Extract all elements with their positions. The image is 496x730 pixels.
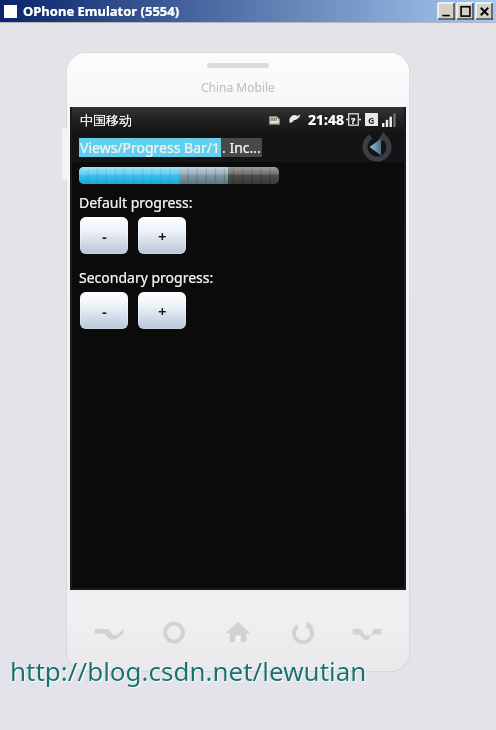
staticText: + — [158, 301, 167, 321]
button[interactable]: Close — [476, 3, 493, 20]
staticText: - — [102, 301, 107, 321]
button[interactable]: + — [138, 217, 186, 254]
button[interactable]: Home — [217, 611, 259, 653]
staticText: Secondary progress: — [79, 268, 214, 287]
button[interactable]: - — [80, 217, 128, 254]
button[interactable]: Back — [360, 132, 394, 162]
button[interactable]: Back — [282, 611, 324, 653]
staticText: + — [158, 226, 167, 246]
staticText: - — [102, 226, 107, 246]
button[interactable]: End call — [346, 611, 388, 653]
staticText: ? — [351, 114, 356, 126]
button[interactable]: Minimize — [438, 3, 455, 20]
staticText: . Inc... — [222, 138, 261, 157]
staticText: G — [368, 114, 375, 126]
button[interactable]: Menu — [88, 611, 130, 653]
staticText: Views/Progress Bar/1 — [80, 138, 220, 157]
button[interactable]: + — [138, 292, 186, 329]
staticText: http://blog.csdn.net/lewutian — [10, 653, 367, 688]
staticText: 21:48 — [308, 110, 344, 129]
staticText: http://blog.csdn.net/lewutian — [11, 654, 368, 689]
button[interactable]: Search — [153, 611, 195, 653]
staticText: Default progress: — [79, 193, 193, 212]
button[interactable]: Maximize — [457, 3, 474, 20]
button[interactable]: - — [80, 292, 128, 329]
staticText: 中国移动 — [80, 112, 132, 128]
staticText: China Mobile — [201, 79, 275, 95]
button[interactable]: Views/Progress Bar/1 — [79, 138, 262, 157]
staticText: OPhone Emulator (5554) — [23, 2, 180, 20]
